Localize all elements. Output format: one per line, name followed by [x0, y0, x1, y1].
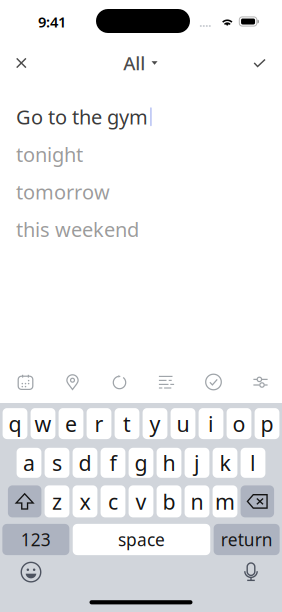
button[interactable]: e [59, 408, 83, 439]
staticText: All [123, 51, 145, 75]
staticText: p [260, 409, 273, 438]
button[interactable]: l [241, 448, 265, 478]
button[interactable]: Dictation [220, 561, 282, 583]
button[interactable]: j [185, 448, 209, 478]
staticText: m [215, 487, 235, 515]
staticText: 123 [21, 528, 51, 551]
button[interactable]: 123 [2, 524, 69, 555]
staticText: y [149, 409, 160, 438]
button[interactable]: i [199, 408, 223, 439]
button[interactable]: x [73, 485, 97, 517]
button[interactable]: p [255, 408, 279, 439]
button[interactable]: f [101, 448, 125, 478]
staticText: d [78, 449, 91, 477]
staticText: this weekend [16, 216, 139, 243]
staticText: 9:41 [38, 12, 66, 31]
button[interactable]: Location [49, 368, 96, 396]
staticText: Go to the gym [16, 103, 148, 130]
staticText: j [194, 449, 200, 477]
button[interactable]: z [45, 485, 69, 517]
button[interactable]: k [213, 448, 237, 478]
button[interactable]: n [185, 485, 209, 517]
button[interactable]: w [31, 408, 55, 439]
staticText: u [176, 409, 189, 438]
button[interactable]: Repeat [96, 368, 143, 396]
button[interactable]: a [17, 448, 41, 478]
staticText: e [65, 409, 77, 438]
button[interactable]: o [227, 408, 251, 439]
button[interactable]: s [45, 448, 69, 478]
button[interactable]: tonight [16, 135, 83, 173]
staticText: z [52, 487, 62, 515]
button[interactable]: v [129, 485, 153, 517]
staticText: k [219, 449, 230, 477]
button[interactable]: More options [237, 368, 282, 396]
button[interactable]: return [214, 524, 280, 555]
staticText: w [34, 409, 51, 438]
staticText: tomorrow [16, 178, 110, 205]
button[interactable]: Emoji keyboard [0, 561, 62, 583]
button[interactable]: space [73, 524, 210, 555]
staticText: t [123, 409, 131, 438]
button[interactable]: q [3, 408, 27, 439]
staticText: r [94, 409, 103, 438]
staticText: n [190, 487, 203, 515]
staticText: g [134, 449, 147, 477]
button[interactable]: m [213, 485, 237, 517]
staticText: o [232, 409, 245, 438]
staticText: return [221, 528, 273, 551]
button[interactable]: g [129, 448, 153, 478]
button[interactable]: r [87, 408, 111, 439]
staticText: s [52, 449, 62, 477]
button[interactable]: All [116, 45, 164, 81]
staticText: v [135, 487, 146, 515]
button[interactable]: d [73, 448, 97, 478]
staticText: q [8, 409, 21, 438]
staticText: l [250, 449, 256, 477]
staticText: tonight [16, 141, 83, 168]
staticText: f [109, 449, 116, 477]
button[interactable]: Delete [241, 485, 274, 517]
button[interactable]: Close [2, 45, 40, 81]
button[interactable]: b [157, 485, 181, 517]
button[interactable]: Subtasks [190, 368, 237, 396]
button[interactable]: Done [241, 45, 279, 81]
staticText: b [162, 487, 175, 515]
staticText: c [108, 487, 118, 515]
staticText: a [23, 449, 35, 477]
button[interactable]: y [143, 408, 167, 439]
button[interactable]: h [157, 448, 181, 478]
button[interactable]: Notes [143, 368, 190, 396]
button[interactable]: this weekend [16, 210, 139, 248]
button[interactable]: tomorrow [16, 173, 110, 210]
staticText: x [79, 487, 90, 515]
button[interactable]: Due date [2, 368, 49, 396]
button[interactable]: t [115, 408, 139, 439]
staticText: space [118, 528, 165, 551]
staticText: h [162, 449, 175, 477]
button[interactable]: c [101, 485, 125, 517]
button[interactable]: Shift [8, 485, 41, 517]
staticText: i [208, 409, 214, 438]
button[interactable]: u [171, 408, 195, 439]
